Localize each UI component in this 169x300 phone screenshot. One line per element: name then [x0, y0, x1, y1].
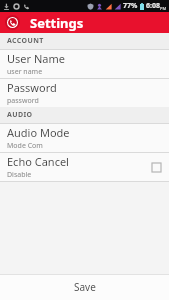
button[interactable]: User Name: [0, 50, 169, 78]
staticText: Settings: [30, 14, 84, 32]
button[interactable]: Password: [0, 79, 169, 107]
staticText: ACCOUNT: [7, 36, 44, 46]
staticText: 77%: [123, 1, 138, 11]
staticText: user name: [7, 67, 43, 77]
staticText: Disable: [7, 170, 32, 180]
staticText: Audio Mode: [7, 125, 70, 140]
staticText: 6:08: [146, 1, 160, 11]
button[interactable]: Audio Mode: [0, 124, 169, 152]
staticText: Echo Cancel: [7, 154, 69, 169]
button[interactable]: Save: [0, 274, 169, 300]
button[interactable]: App icon: [5, 15, 20, 30]
staticText: PM: [160, 6, 167, 11]
staticText: User Name: [7, 51, 65, 66]
staticText: password: [7, 96, 39, 106]
staticText: AUDIO: [7, 110, 33, 120]
staticText: Password: [7, 80, 57, 95]
staticText: Save: [74, 280, 96, 294]
button[interactable]: Echo Cancel: [0, 153, 169, 181]
staticText: Mode Com: [7, 141, 43, 151]
button[interactable]: Echo Cancel checkbox: [150, 161, 162, 173]
